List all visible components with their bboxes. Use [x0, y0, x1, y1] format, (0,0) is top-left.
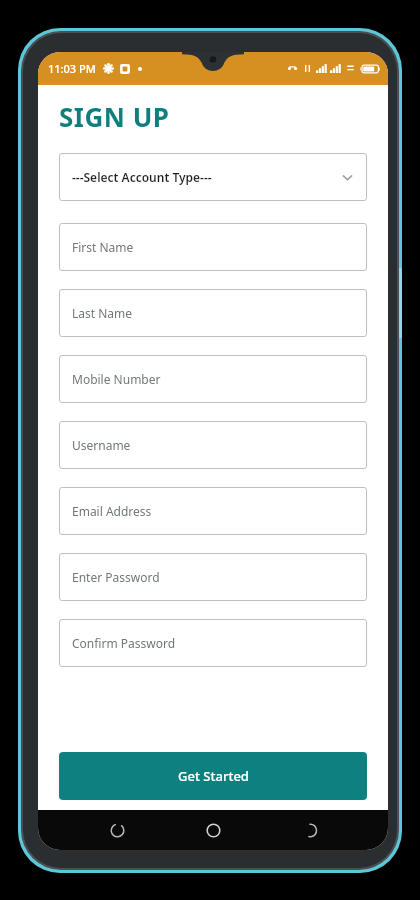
staticText: ---Select Account Type--- — [72, 169, 212, 185]
staticText: SIGN UP — [59, 99, 170, 134]
staticText: Username — [72, 437, 131, 453]
staticText: Mobile Number — [72, 371, 161, 387]
button[interactable]: Confirm Password — [59, 619, 367, 667]
button[interactable]: First Name — [59, 223, 367, 271]
button[interactable]: Home — [195, 812, 231, 848]
button[interactable]: Email Address — [59, 487, 367, 535]
button[interactable]: Username — [59, 421, 367, 469]
button[interactable]: Recent apps — [99, 812, 135, 848]
staticText: Email Address — [72, 503, 152, 519]
staticText: 11:03 PM — [48, 61, 96, 76]
staticText: First Name — [72, 239, 134, 255]
button[interactable]: Last Name — [59, 289, 367, 337]
staticText: Enter Password — [72, 569, 160, 585]
staticText: Confirm Password — [72, 635, 176, 651]
staticText: Last Name — [72, 305, 133, 321]
button[interactable]: Get Started — [59, 752, 367, 800]
button[interactable]: Back — [292, 812, 328, 848]
button[interactable]: Mobile Number — [59, 355, 367, 403]
button[interactable]: Enter Password — [59, 553, 367, 601]
staticText: Get Started — [178, 767, 249, 785]
button[interactable]: ---Select Account Type--- — [59, 153, 367, 201]
